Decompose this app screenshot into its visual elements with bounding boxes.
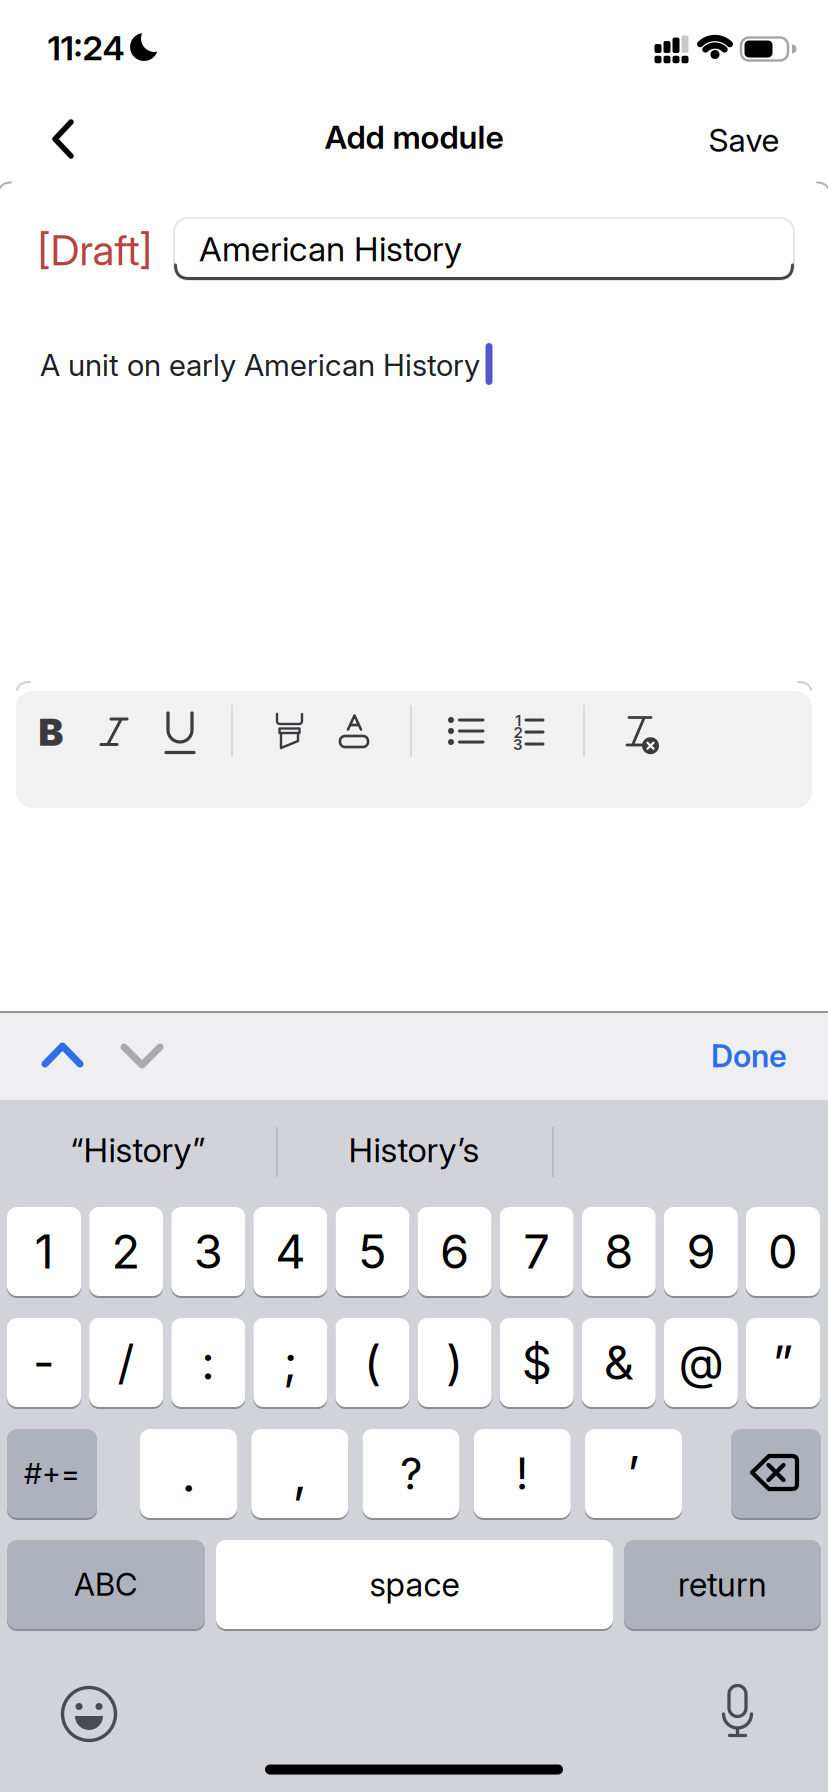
button[interactable]: ( bbox=[335, 1316, 409, 1408]
button[interactable]: 7 bbox=[500, 1205, 574, 1297]
staticText: return bbox=[678, 1564, 767, 1604]
button[interactable]: Delete bbox=[731, 1427, 821, 1519]
staticText: ” bbox=[772, 1334, 793, 1391]
button[interactable]: ABC bbox=[7, 1538, 205, 1630]
staticText: ! bbox=[516, 1447, 529, 1500]
button[interactable]: , bbox=[251, 1427, 348, 1519]
button[interactable]: / bbox=[89, 1316, 163, 1408]
staticText: - bbox=[33, 1334, 55, 1391]
button[interactable]: Dictation bbox=[705, 1680, 769, 1744]
staticText: ( bbox=[364, 1334, 381, 1391]
button[interactable]: Emoji bbox=[57, 1682, 121, 1746]
staticText: 1 bbox=[515, 711, 521, 729]
button[interactable]: Bold bbox=[19, 700, 83, 764]
staticText: 1 bbox=[34, 1223, 53, 1280]
staticText: ) bbox=[446, 1334, 463, 1391]
button[interactable]: 6 bbox=[418, 1205, 492, 1297]
button[interactable]: 3 bbox=[171, 1205, 245, 1297]
staticText: 4 bbox=[275, 1223, 305, 1280]
staticText: 9 bbox=[686, 1223, 715, 1280]
button[interactable]: @ bbox=[664, 1316, 738, 1408]
button[interactable]: Done bbox=[711, 1037, 787, 1075]
staticText: 2 bbox=[513, 723, 522, 741]
staticText: A unit on early American History bbox=[40, 347, 480, 383]
button[interactable]: space bbox=[216, 1538, 613, 1630]
button[interactable]: Back bbox=[33, 103, 93, 175]
staticText: ; bbox=[283, 1334, 297, 1391]
button[interactable]: Save bbox=[708, 121, 779, 159]
button[interactable]: Module title bbox=[174, 218, 794, 280]
button[interactable]: Bulleted list bbox=[433, 699, 497, 763]
staticText: & bbox=[604, 1334, 634, 1391]
button[interactable]: 1 bbox=[7, 1205, 81, 1297]
staticText: @ bbox=[678, 1334, 723, 1391]
staticText: ’ bbox=[627, 1444, 640, 1503]
staticText: : bbox=[201, 1334, 215, 1391]
button[interactable]: : bbox=[171, 1316, 245, 1408]
staticText: [Draft] bbox=[37, 225, 152, 275]
staticText: space bbox=[369, 1564, 459, 1604]
button[interactable]: 2 bbox=[89, 1205, 163, 1297]
button[interactable]: 4 bbox=[253, 1205, 327, 1297]
button[interactable]: ” bbox=[746, 1316, 820, 1408]
staticText: ABC bbox=[74, 1566, 138, 1603]
button[interactable]: ? bbox=[362, 1427, 459, 1519]
button[interactable]: Clear formatting bbox=[610, 699, 674, 763]
button[interactable]: History’s bbox=[279, 1105, 549, 1195]
button[interactable]: - bbox=[7, 1316, 81, 1408]
staticText: 3 bbox=[513, 735, 523, 753]
button[interactable]: Highlight bbox=[257, 699, 321, 763]
staticText: “History” bbox=[70, 1129, 205, 1170]
button[interactable]: ) bbox=[418, 1316, 492, 1408]
staticText: Save bbox=[708, 121, 779, 159]
button[interactable]: return bbox=[624, 1538, 821, 1630]
staticText: 7 bbox=[523, 1223, 550, 1280]
button[interactable]: Numbered list bbox=[497, 699, 561, 763]
button[interactable]: 8 bbox=[582, 1205, 656, 1297]
staticText: / bbox=[118, 1334, 135, 1391]
staticText: B bbox=[38, 709, 63, 755]
staticText: 3 bbox=[194, 1223, 223, 1280]
button[interactable]: ! bbox=[474, 1427, 571, 1519]
button[interactable]: & bbox=[582, 1316, 656, 1408]
button[interactable]: Italic bbox=[81, 699, 145, 763]
staticText: Add module bbox=[324, 118, 503, 156]
button[interactable]: “History” bbox=[3, 1105, 273, 1195]
button[interactable]: #+= bbox=[7, 1427, 97, 1519]
staticText: $ bbox=[522, 1334, 552, 1391]
staticText: 0 bbox=[768, 1223, 798, 1280]
staticText: ? bbox=[400, 1447, 422, 1500]
staticText: 6 bbox=[440, 1223, 469, 1280]
staticText: 5 bbox=[358, 1223, 387, 1280]
button[interactable]: ; bbox=[253, 1316, 327, 1408]
button[interactable]: Font color bbox=[322, 699, 386, 763]
staticText: 8 bbox=[604, 1223, 633, 1280]
button[interactable]: . bbox=[140, 1427, 237, 1519]
staticText: , bbox=[293, 1443, 307, 1504]
staticText: American History bbox=[199, 228, 462, 269]
button[interactable]: 9 bbox=[664, 1205, 738, 1297]
staticText: . bbox=[181, 1443, 195, 1504]
staticText: Done bbox=[711, 1037, 787, 1075]
button[interactable]: Previous field bbox=[27, 1025, 97, 1085]
button[interactable]: Underline bbox=[148, 700, 212, 764]
button[interactable]: ’ bbox=[585, 1427, 682, 1519]
button[interactable]: 5 bbox=[335, 1205, 409, 1297]
button[interactable]: 0 bbox=[746, 1205, 820, 1297]
staticText: 2 bbox=[112, 1223, 141, 1280]
staticText: #+= bbox=[24, 1456, 80, 1491]
staticText: History’s bbox=[348, 1129, 479, 1170]
button[interactable]: Next field bbox=[107, 1025, 177, 1085]
staticText: 11:24 bbox=[47, 27, 124, 68]
button[interactable]: $ bbox=[500, 1316, 574, 1408]
